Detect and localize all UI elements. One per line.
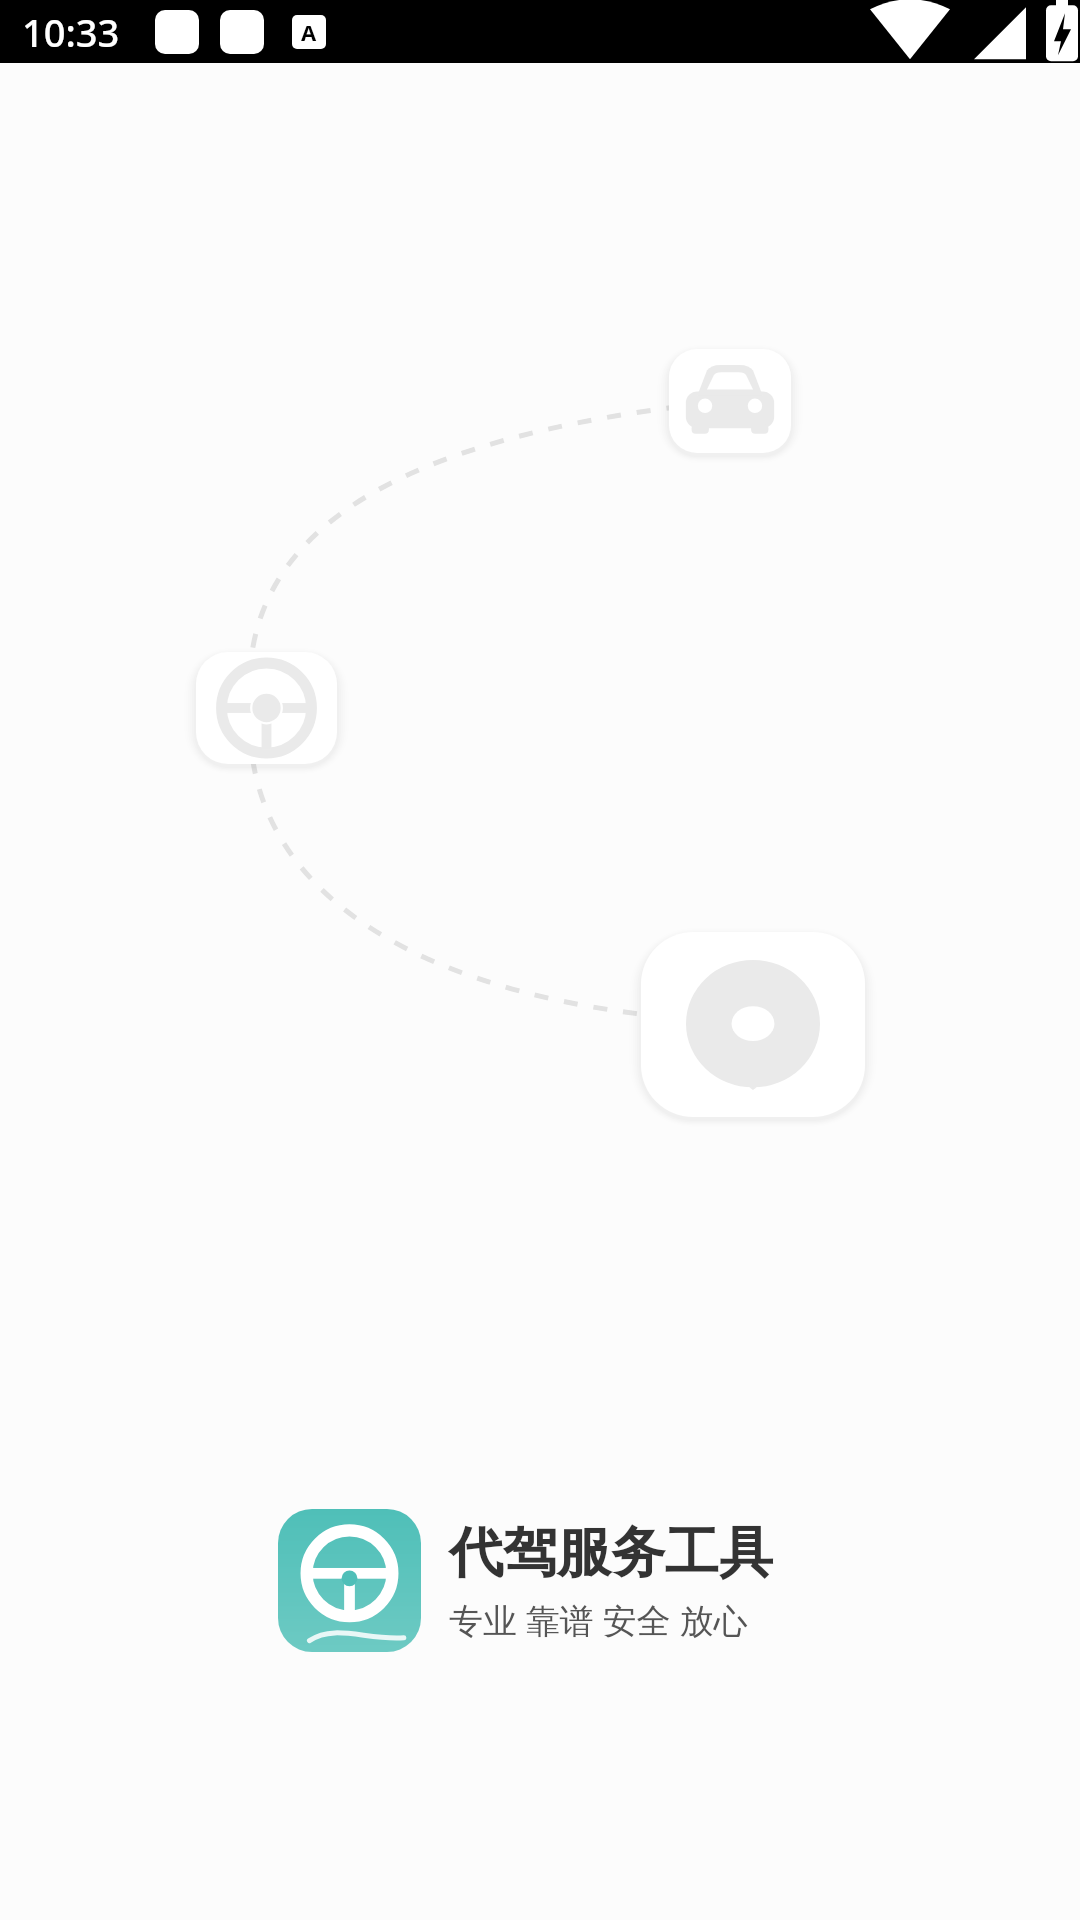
staticText: 代驾服务工具	[449, 1519, 773, 1587]
staticText: 专业 靠谱 安全 放心	[449, 1597, 748, 1643]
staticText: 10:33	[22, 6, 120, 58]
staticText: A	[301, 17, 317, 47]
